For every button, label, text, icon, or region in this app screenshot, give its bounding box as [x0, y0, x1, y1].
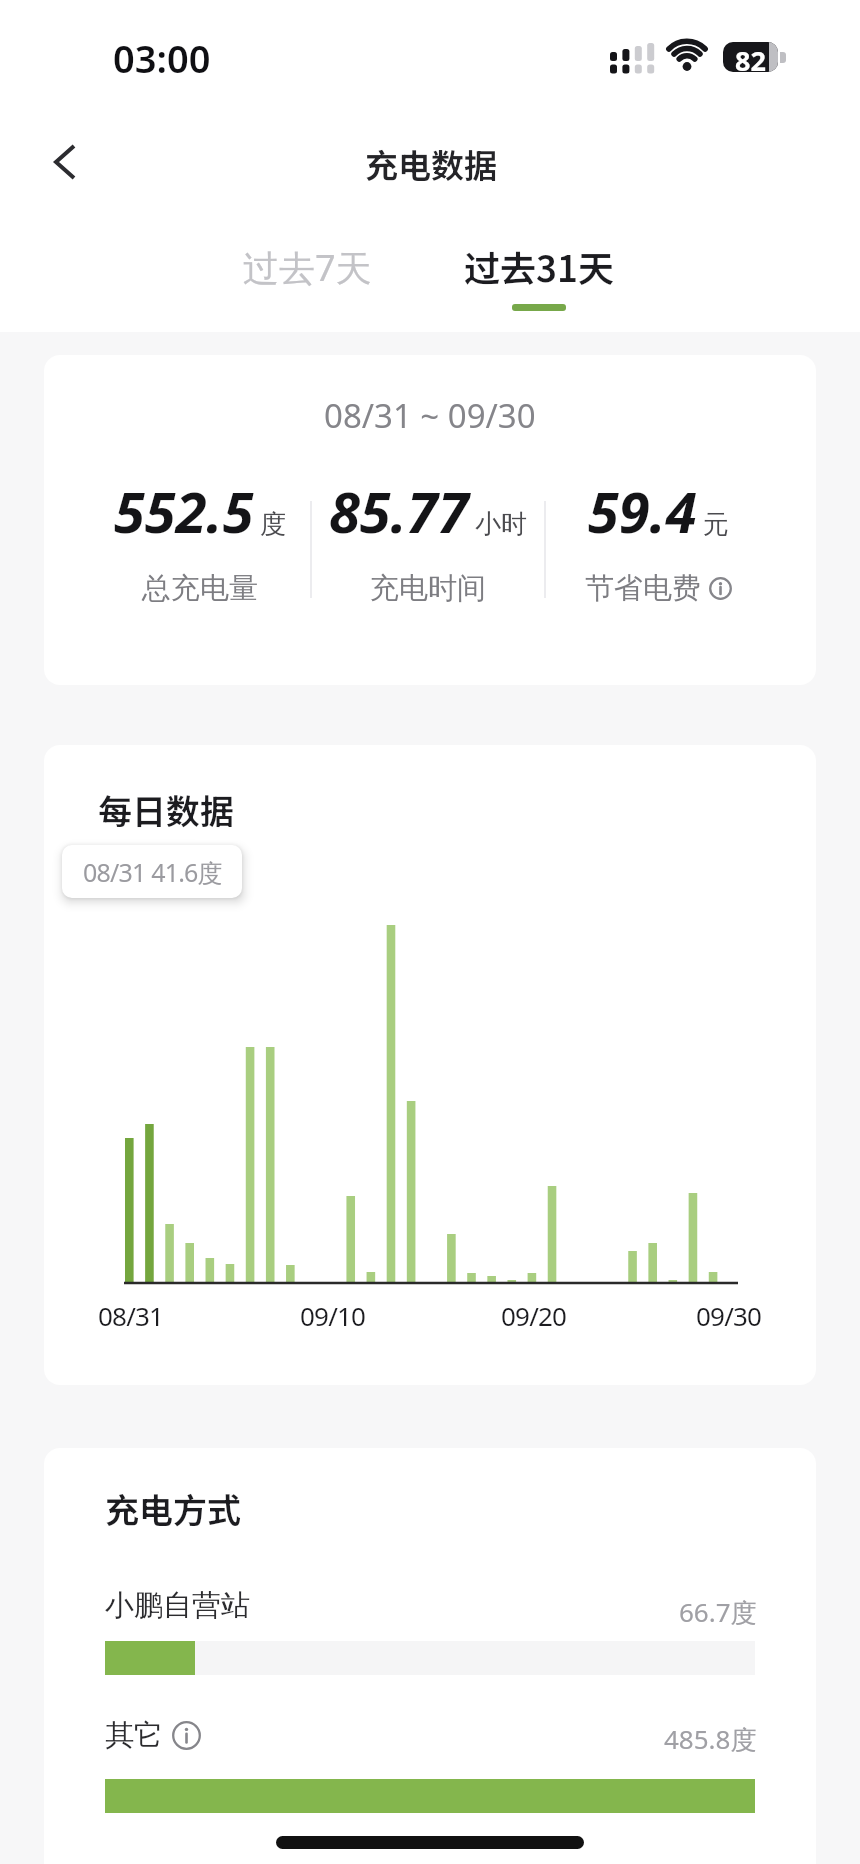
staticText: 485.8度 — [664, 1721, 757, 1757]
staticText: 充电时间 — [370, 570, 486, 607]
button[interactable]: 过去7天 — [222, 232, 392, 302]
staticText: 小时 — [475, 508, 527, 541]
button[interactable] — [40, 134, 100, 194]
staticText: 度 — [260, 508, 286, 541]
button[interactable] — [172, 1721, 201, 1750]
staticText: 82 — [735, 42, 766, 72]
staticText: 09/10 — [300, 1298, 366, 1333]
staticText: 元 — [703, 508, 729, 541]
staticText: 08/31 — [98, 1298, 164, 1333]
staticText: 08/31 41.6度 — [83, 855, 222, 889]
staticText: 过去7天 — [243, 243, 372, 292]
staticText: 552.5 — [114, 473, 254, 549]
staticText: 09/30 — [696, 1298, 762, 1333]
staticText: 08/31 ~ 09/30 — [324, 393, 536, 438]
staticText: 过去31天 — [464, 240, 614, 292]
staticText: 总充电量 — [142, 570, 258, 607]
button[interactable]: 过去31天 — [454, 231, 624, 301]
staticText: 小鹏自营站 — [105, 1587, 250, 1624]
staticText: 充电方式 — [105, 1484, 241, 1533]
staticText: 59.4 — [588, 473, 697, 549]
staticText: 充电数据 — [365, 140, 497, 188]
staticText: 09/20 — [501, 1298, 567, 1333]
staticText: 03:00 — [113, 32, 211, 84]
button[interactable] — [709, 577, 732, 600]
staticText: 其它 — [105, 1717, 163, 1754]
staticText: 每日数据 — [98, 785, 234, 834]
staticText: 66.7度 — [679, 1594, 757, 1630]
staticText: 节省电费 — [585, 570, 701, 607]
staticText: 85.77 — [329, 473, 469, 549]
